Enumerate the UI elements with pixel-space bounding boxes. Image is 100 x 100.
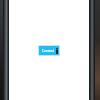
- button[interactable]: Connect: [39, 46, 59, 55]
- other: Status indicator: [56, 48, 58, 54]
- staticText: Connect: [42, 49, 54, 53]
